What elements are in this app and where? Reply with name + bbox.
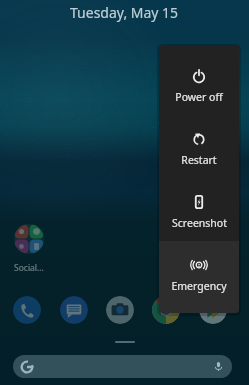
staticText: Restart [181, 153, 217, 167]
button[interactable]: Camera [106, 296, 134, 324]
button[interactable]: Search [13, 355, 232, 378]
button[interactable]: Social folder [14, 224, 44, 254]
staticText: Power off [175, 90, 223, 104]
button[interactable]: Emergency [159, 241, 239, 313]
staticText: Emergency [171, 279, 227, 293]
button[interactable]: Chrome [152, 296, 180, 324]
button[interactable]: Restart [159, 109, 239, 171]
staticText: Screenshot [172, 216, 227, 230]
button[interactable]: Messages [60, 296, 88, 324]
button[interactable]: Power off [159, 45, 239, 109]
button[interactable]: Screenshot [159, 171, 239, 241]
button[interactable]: Phone [13, 296, 41, 324]
button[interactable]: Play Store [199, 296, 227, 324]
staticText: Social... [14, 262, 44, 274]
staticText: Tuesday, May 15 [70, 3, 179, 22]
